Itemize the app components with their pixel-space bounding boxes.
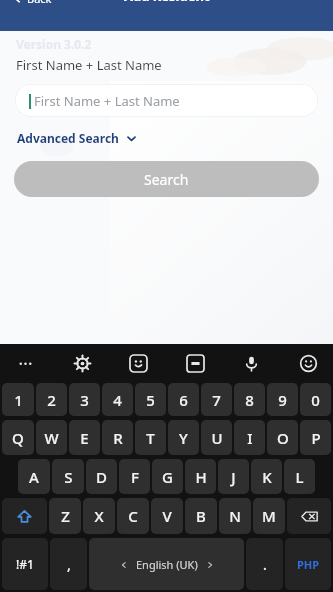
button[interactable]: Q bbox=[2, 420, 34, 455]
button[interactable]: 9 bbox=[267, 383, 298, 416]
staticText: C bbox=[128, 506, 138, 526]
button[interactable]: Emoji bbox=[291, 346, 325, 380]
button[interactable]: H bbox=[185, 459, 216, 494]
staticText: O bbox=[277, 428, 289, 448]
staticText: B bbox=[196, 506, 206, 526]
staticText: L bbox=[295, 467, 304, 487]
button[interactable]: L bbox=[284, 459, 315, 494]
button[interactable]: 3 bbox=[69, 383, 100, 416]
staticText: 5 bbox=[146, 390, 155, 410]
button[interactable]: Space bbox=[89, 538, 244, 590]
staticText: 6 bbox=[179, 390, 188, 410]
staticText: G bbox=[162, 467, 173, 487]
button[interactable]: F bbox=[119, 459, 150, 494]
button[interactable]: Back bbox=[8, 0, 56, 9]
staticText: First Name + Last Name bbox=[34, 92, 180, 110]
staticText: J bbox=[231, 467, 236, 487]
staticText: Z bbox=[61, 506, 70, 526]
button[interactable]: . bbox=[246, 538, 283, 590]
staticText: Y bbox=[179, 428, 188, 448]
staticText: H bbox=[195, 467, 207, 487]
button[interactable]: Y bbox=[168, 420, 199, 455]
button[interactable]: Enter bbox=[285, 538, 331, 590]
staticText: Search bbox=[144, 170, 189, 189]
staticText: N bbox=[229, 506, 241, 526]
staticText: , bbox=[67, 555, 71, 574]
staticText: !#1 bbox=[16, 556, 34, 572]
button[interactable]: , bbox=[50, 538, 87, 590]
staticText: First Name + Last Name bbox=[16, 56, 162, 74]
button[interactable]: K bbox=[251, 459, 282, 494]
staticText: . bbox=[263, 555, 267, 574]
button[interactable]: B bbox=[185, 498, 217, 534]
staticText: M bbox=[262, 506, 276, 526]
staticText: A bbox=[29, 467, 39, 487]
button[interactable]: I bbox=[234, 420, 265, 455]
button[interactable]: D bbox=[86, 459, 117, 494]
button[interactable]: E bbox=[69, 420, 100, 455]
button[interactable]: More bbox=[8, 346, 42, 380]
button[interactable]: 5 bbox=[135, 383, 166, 416]
staticText: PHP bbox=[297, 557, 320, 572]
staticText: 3 bbox=[80, 390, 89, 410]
button[interactable]: 1 bbox=[2, 383, 34, 416]
staticText: 9 bbox=[278, 390, 287, 410]
button[interactable]: GIF bbox=[178, 346, 212, 380]
button[interactable]: P bbox=[300, 420, 331, 455]
staticText: X bbox=[94, 506, 104, 526]
staticText: V bbox=[162, 506, 172, 526]
staticText: F bbox=[131, 467, 139, 487]
staticText: T bbox=[146, 428, 155, 448]
button[interactable]: J bbox=[218, 459, 249, 494]
button[interactable]: First Name + Last Name bbox=[15, 84, 318, 117]
staticText: Back bbox=[27, 0, 52, 6]
button[interactable]: Shift bbox=[2, 498, 47, 534]
button[interactable]: O bbox=[267, 420, 298, 455]
button[interactable]: 2 bbox=[36, 383, 67, 416]
button[interactable]: A bbox=[18, 459, 50, 494]
staticText: U bbox=[211, 428, 223, 448]
button[interactable]: Voice input bbox=[234, 346, 268, 380]
button[interactable]: V bbox=[151, 498, 183, 534]
button[interactable]: 0 bbox=[300, 383, 331, 416]
button[interactable]: C bbox=[117, 498, 149, 534]
staticText: E bbox=[80, 428, 89, 448]
button[interactable]: Stickers bbox=[121, 346, 155, 380]
button[interactable]: Backspace bbox=[287, 498, 331, 534]
staticText: 7 bbox=[212, 390, 221, 410]
button[interactable]: W bbox=[36, 420, 67, 455]
button[interactable]: 4 bbox=[102, 383, 133, 416]
button[interactable]: T bbox=[135, 420, 166, 455]
button[interactable]: R bbox=[102, 420, 133, 455]
staticText: D bbox=[96, 467, 107, 487]
staticText: Q bbox=[12, 428, 24, 448]
staticText: 4 bbox=[113, 390, 122, 410]
button[interactable]: !#1 bbox=[2, 538, 48, 590]
staticText: P bbox=[311, 428, 321, 448]
staticText: I bbox=[247, 428, 253, 448]
button[interactable]: G bbox=[152, 459, 183, 494]
button[interactable]: X bbox=[83, 498, 115, 534]
staticText: S bbox=[64, 467, 73, 487]
button[interactable]: Advanced Search bbox=[15, 128, 139, 148]
staticText: Version 3.0.2 bbox=[16, 36, 92, 52]
button[interactable]: N bbox=[219, 498, 251, 534]
button[interactable]: Search bbox=[14, 161, 319, 197]
button[interactable]: S bbox=[52, 459, 84, 494]
staticText: 0 bbox=[311, 390, 320, 410]
button[interactable]: M bbox=[253, 498, 285, 534]
button[interactable]: Z bbox=[49, 498, 81, 534]
staticText: K bbox=[262, 467, 272, 487]
staticText: English (UK) bbox=[136, 557, 198, 572]
staticText: 1 bbox=[14, 390, 23, 410]
button[interactable]: 7 bbox=[201, 383, 232, 416]
staticText: 2 bbox=[47, 390, 56, 410]
button[interactable]: 6 bbox=[168, 383, 199, 416]
button[interactable]: U bbox=[201, 420, 232, 455]
staticText: Add Resident bbox=[124, 0, 210, 5]
button[interactable]: Settings bbox=[65, 346, 99, 380]
staticText: Advanced Search bbox=[17, 130, 119, 146]
button[interactable]: 8 bbox=[234, 383, 265, 416]
staticText: W bbox=[44, 428, 59, 448]
